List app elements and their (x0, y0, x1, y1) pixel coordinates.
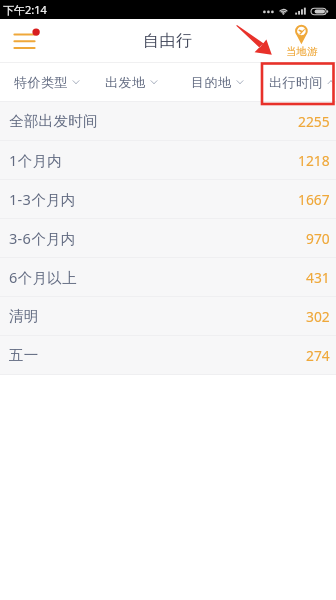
button[interactable]: 6个月以上 (0, 258, 336, 296)
staticText: 清明 (9, 307, 39, 325)
staticText: 出行时间 (269, 74, 323, 90)
button[interactable]: 1个月内 (0, 141, 336, 179)
staticText: 970 (306, 229, 330, 248)
staticText: 3-6个月内 (9, 228, 76, 248)
staticText: 特价类型 (14, 74, 68, 90)
staticText: 6个月以上 (9, 267, 77, 287)
staticText: 1218 (298, 151, 330, 170)
staticText: 当地游 (286, 45, 318, 58)
button[interactable]: 当地游 Local tours (286, 19, 336, 63)
staticText: 1个月内 (9, 150, 62, 170)
staticText: 1-3个月内 (9, 189, 76, 209)
button[interactable]: 出发地 (89, 63, 173, 101)
staticText: 自由行 (143, 31, 193, 51)
button[interactable]: Menu (4, 19, 48, 63)
button[interactable]: 全部出发时间 (0, 102, 336, 140)
staticText: 431 (306, 268, 330, 287)
button[interactable]: 五一 (0, 336, 336, 374)
button[interactable]: 特价类型 (4, 63, 88, 101)
staticText: 出发地 (105, 74, 146, 90)
staticText: 目的地 (191, 74, 232, 90)
button[interactable]: 清明 (0, 297, 336, 335)
button[interactable]: 目的地 (175, 63, 259, 101)
staticText: 五一 (9, 346, 39, 364)
button[interactable]: 出行时间 (259, 63, 336, 101)
staticText: 1667 (298, 190, 330, 209)
button[interactable]: 3-6个月内 (0, 219, 336, 257)
staticText: 274 (306, 346, 330, 365)
staticText: 下午2:14 (3, 2, 47, 17)
staticText: 302 (306, 307, 330, 326)
button[interactable]: 1-3个月内 (0, 180, 336, 218)
staticText: 全部出发时间 (9, 112, 98, 130)
staticText: 2255 (298, 112, 330, 131)
